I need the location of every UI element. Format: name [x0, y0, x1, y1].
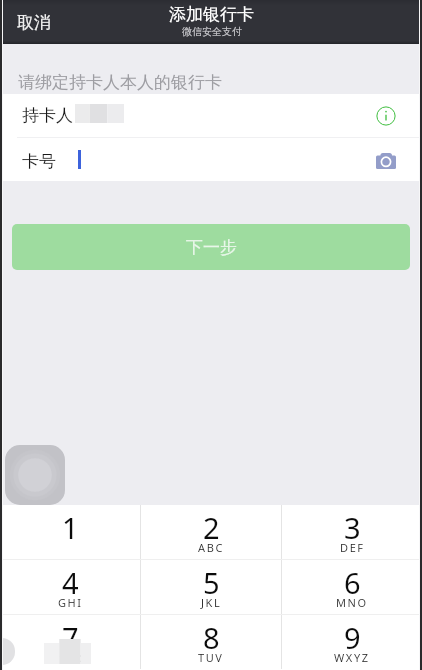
button[interactable]: 5 — [141, 560, 281, 614]
button[interactable]: 6 — [282, 560, 422, 614]
staticText: 微信安全支付 — [182, 25, 242, 38]
button[interactable]: 7 — [0, 615, 140, 669]
staticText: GHI — [58, 595, 83, 610]
other: Cardholder info — [376, 106, 396, 126]
staticText: JKL — [201, 595, 222, 610]
staticText: 下一步 — [186, 237, 237, 258]
staticText: 1 — [62, 508, 79, 547]
button[interactable]: 卡号 — [0, 138, 422, 181]
staticText: PQRS — [53, 650, 88, 665]
staticText: 卡号 — [22, 151, 56, 172]
staticText: 5 — [203, 563, 220, 602]
staticText: MNO — [336, 595, 368, 610]
button[interactable]: 2 — [141, 505, 281, 559]
button[interactable]: 4 — [0, 560, 140, 614]
button[interactable]: 下一步 — [12, 224, 410, 270]
staticText: ABC — [198, 540, 224, 555]
button[interactable]: 取消 — [0, 2, 67, 43]
button[interactable]: 3 — [282, 505, 422, 559]
staticText: 2 — [203, 508, 220, 547]
staticText: 添加银行卡 — [169, 4, 254, 25]
staticText: 取消 — [17, 12, 51, 33]
staticText: 7 — [62, 618, 79, 657]
button[interactable]: 9 — [282, 615, 422, 669]
staticText: WXYZ — [334, 650, 370, 665]
staticText: 3 — [344, 508, 361, 547]
staticText: DEF — [340, 540, 365, 555]
staticText: 持卡人 — [22, 105, 73, 126]
other: Scan card number — [376, 153, 396, 169]
button[interactable]: 1 — [0, 505, 140, 559]
button[interactable]: Assistive touch — [5, 445, 65, 505]
staticText: 9 — [344, 618, 361, 657]
button[interactable]: 8 — [141, 615, 281, 669]
staticText: TUV — [198, 650, 224, 665]
staticText: 6 — [344, 563, 361, 602]
staticText: 4 — [62, 563, 79, 602]
staticText: 8 — [203, 618, 220, 657]
button[interactable]: 持卡人 — [0, 94, 422, 137]
staticText: 请绑定持卡人本人的银行卡 — [18, 72, 222, 93]
